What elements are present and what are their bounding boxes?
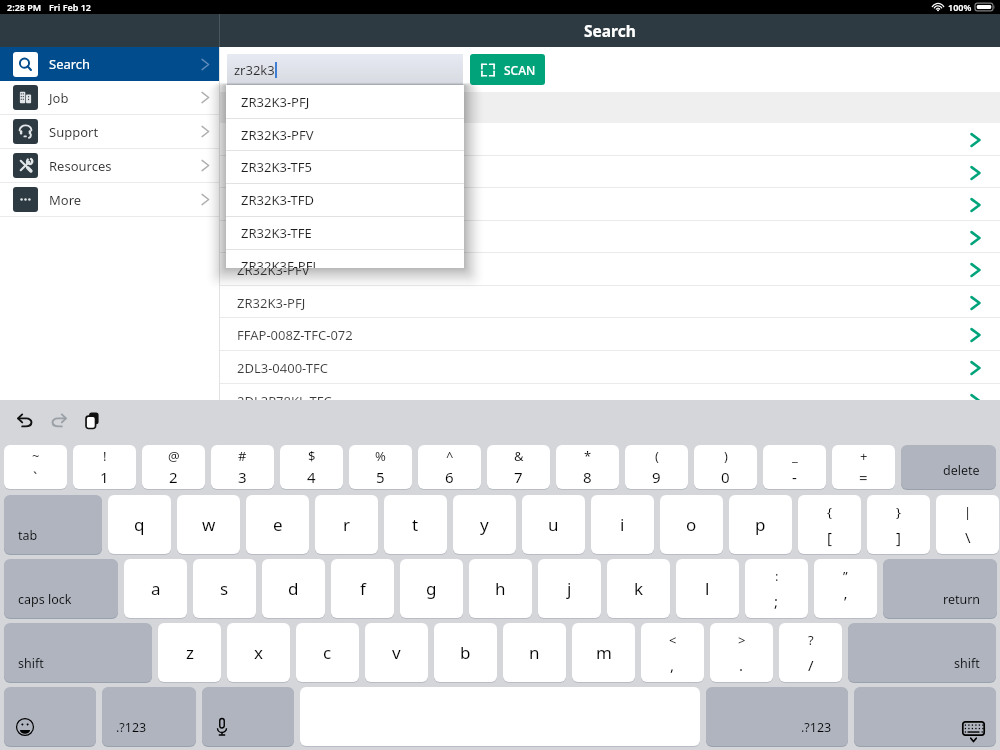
button[interactable]: .?123 — [102, 687, 196, 746]
staticText: ’ — [844, 591, 847, 611]
staticText: p — [755, 513, 766, 536]
button[interactable]: u — [522, 495, 585, 554]
button[interactable]: ZR32K3-PFV — [220, 156, 1000, 189]
button[interactable]: : — [745, 559, 808, 618]
button[interactable]: < — [641, 623, 704, 682]
button[interactable]: zr32k3 — [227, 54, 463, 86]
button[interactable]: Resources — [0, 149, 220, 182]
button[interactable]: emoji — [4, 687, 96, 746]
button[interactable]: g — [400, 559, 463, 618]
button[interactable]: shift — [4, 623, 152, 682]
button[interactable]: ZR32K3-PFJ — [220, 123, 1000, 156]
button[interactable]: return — [883, 559, 997, 618]
button[interactable]: ^ — [418, 445, 481, 489]
button[interactable]: y — [453, 495, 516, 554]
button[interactable]: d — [262, 559, 325, 618]
button[interactable]: | — [936, 495, 999, 554]
button[interactable]: Search — [0, 47, 220, 81]
button[interactable]: % — [349, 445, 412, 489]
button[interactable]: p — [729, 495, 792, 554]
button[interactable]: f — [331, 559, 394, 618]
button[interactable]: ! — [73, 445, 136, 489]
button[interactable]: h — [469, 559, 532, 618]
button[interactable]: ZR32K3-PFJ — [220, 286, 1000, 319]
button[interactable]: ZR32K3-PFJ — [226, 85, 464, 118]
button[interactable]: } — [867, 495, 930, 554]
button[interactable]: r — [315, 495, 378, 554]
button[interactable]: * — [556, 445, 619, 489]
button[interactable]: s — [193, 559, 256, 618]
staticText: l — [705, 577, 710, 600]
button[interactable]: ZR32K3-PFV — [220, 253, 1000, 286]
button[interactable]: b — [434, 623, 497, 682]
button[interactable]: Redo — [43, 404, 75, 436]
button[interactable]: tab — [4, 495, 102, 554]
button[interactable]: j — [538, 559, 601, 618]
button[interactable]: 2DL3P78KL-TFC — [220, 416, 1000, 449]
button[interactable]: a — [124, 559, 187, 618]
staticText: o — [686, 513, 697, 536]
button[interactable]: # — [211, 445, 274, 489]
button[interactable]: $ — [280, 445, 343, 489]
button[interactable]: caps lock — [4, 559, 118, 618]
button[interactable]: delete — [901, 445, 996, 489]
button[interactable]: 2DL3P78KL-TFC — [220, 384, 1000, 417]
staticText: j — [567, 577, 572, 600]
button[interactable]: o — [660, 495, 723, 554]
button[interactable]: ZR32K3F-PFJ — [226, 249, 464, 268]
button[interactable]: ZR32K3-TF5 — [220, 188, 1000, 221]
button[interactable]: Undo — [9, 404, 41, 436]
button[interactable]: ZR32K3-TFD — [226, 183, 464, 216]
button[interactable]: z — [158, 623, 221, 682]
button[interactable]: w — [177, 495, 240, 554]
staticText: 4 — [307, 467, 316, 487]
button[interactable]: mic — [202, 687, 294, 746]
button[interactable]: shift — [848, 623, 996, 682]
button[interactable]: & — [487, 445, 550, 489]
button[interactable]: _ — [763, 445, 826, 489]
button[interactable]: v — [365, 623, 428, 682]
button[interactable]: ZR32K3-PFV — [226, 118, 464, 151]
button[interactable]: i — [591, 495, 654, 554]
button[interactable]: e — [246, 495, 309, 554]
staticText: Fri Feb 12 — [49, 1, 92, 13]
staticText: Search — [49, 55, 91, 73]
button[interactable]: x — [227, 623, 290, 682]
button[interactable]: m — [572, 623, 635, 682]
button[interactable]: l — [676, 559, 739, 618]
button[interactable]: ? — [779, 623, 842, 682]
button[interactable]: @ — [142, 445, 205, 489]
button[interactable]: { — [798, 495, 861, 554]
button[interactable]: ~ — [4, 445, 67, 489]
button[interactable]: + — [832, 445, 895, 489]
button[interactable]: Support — [0, 115, 220, 148]
button[interactable]: More — [0, 183, 220, 216]
button[interactable]: t — [384, 495, 447, 554]
button[interactable]: ( — [625, 445, 688, 489]
staticText: c — [323, 641, 332, 664]
staticText: t — [412, 513, 419, 536]
button[interactable]: c — [296, 623, 359, 682]
button[interactable]: ” — [814, 559, 877, 618]
staticText: g — [426, 577, 437, 600]
button[interactable]: ZR32K3-TFD — [220, 221, 1000, 254]
button[interactable]: Paste — [76, 404, 108, 436]
button[interactable]: > — [710, 623, 773, 682]
button[interactable]: q — [108, 495, 171, 554]
button[interactable]: FFAP-008Z-TFC-072 — [220, 318, 1000, 351]
button[interactable]: kbd — [854, 687, 996, 746]
button[interactable]: 2DL3-0400-TFC — [220, 351, 1000, 384]
button[interactable]: SCAN — [470, 54, 545, 85]
staticText: Support — [49, 123, 99, 141]
button[interactable]: ZR32K3-TFE — [226, 216, 464, 249]
staticText: { — [827, 503, 832, 521]
staticText: = — [859, 467, 868, 487]
button[interactable]: k — [607, 559, 670, 618]
button[interactable]: ) — [694, 445, 757, 489]
button[interactable]: .?123 — [706, 687, 848, 746]
button[interactable]: Job — [0, 81, 220, 114]
button[interactable]: n — [503, 623, 566, 682]
button[interactable]: ZR32K3-TF5 — [226, 150, 464, 183]
staticText: ZR32K3-PFV — [237, 261, 310, 279]
